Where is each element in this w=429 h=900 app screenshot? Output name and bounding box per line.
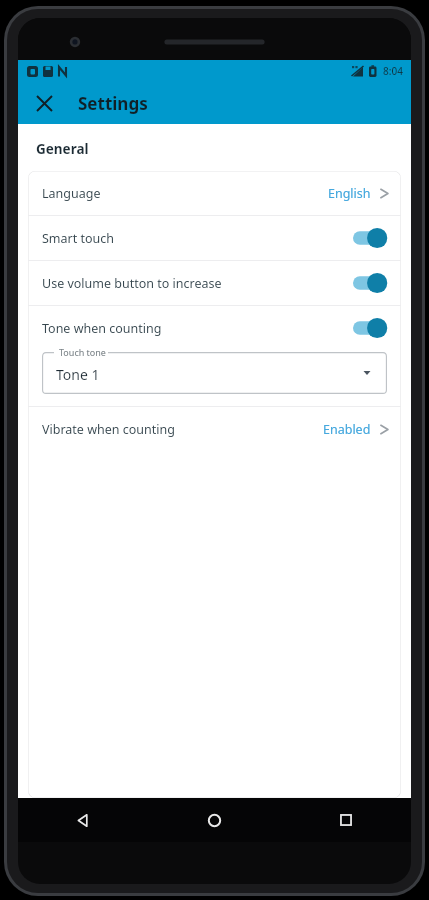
staticText: Smart touch [42,230,115,247]
button[interactable]: Language [28,171,401,215]
staticText: English [328,185,371,202]
button[interactable]: Close [26,85,62,121]
staticText: Tone 1 [56,365,100,384]
staticText: Vibrate when counting [42,421,175,438]
button[interactable]: Home [149,798,280,842]
button[interactable]: Toggle [353,317,387,339]
button[interactable]: Use volume button to increase [28,261,401,305]
button[interactable]: Smart touch [28,216,401,260]
staticText: Enabled [323,421,371,438]
staticText: General [36,140,89,158]
button[interactable]: Tone when counting [28,306,401,350]
button[interactable]: Toggle [353,272,387,294]
button[interactable]: Toggle [353,227,387,249]
staticText: Language [42,185,101,202]
staticText: Use volume button to increase [42,275,222,292]
button[interactable]: Touch tone [42,352,387,394]
staticText: Tone when counting [42,320,162,337]
button[interactable]: Back [18,798,149,842]
staticText: Settings [78,92,148,115]
button[interactable]: Recent apps [280,798,411,842]
button[interactable]: Vibrate when counting [28,407,401,451]
staticText: 8:04 [383,64,403,78]
staticText: Touch tone [59,346,106,358]
